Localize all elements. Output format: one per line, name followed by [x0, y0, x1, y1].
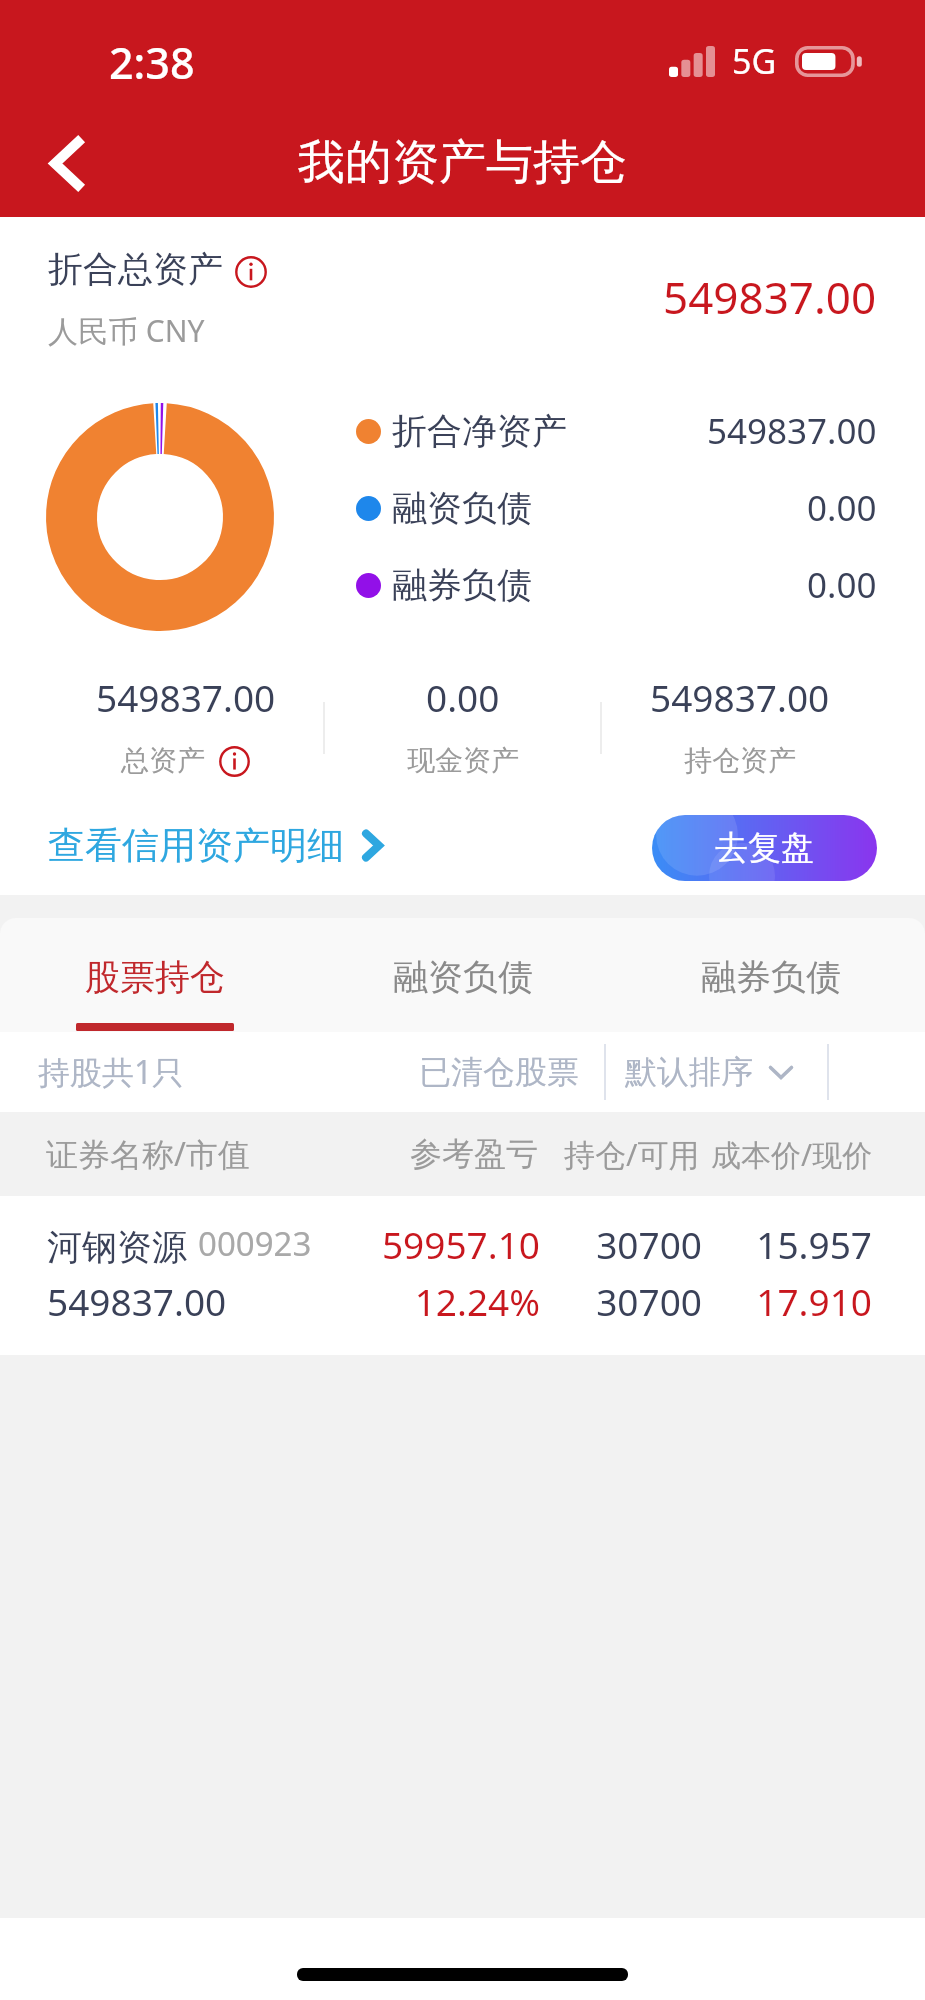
staticText: 折合净资产	[392, 409, 567, 453]
staticText: 折合总资产	[48, 247, 223, 291]
staticText: 000923	[198, 1221, 312, 1266]
staticText: 0.00	[807, 484, 877, 532]
button[interactable]: 默认排序	[625, 1046, 793, 1098]
staticText: 去复盘	[715, 827, 814, 869]
button[interactable]: 融资负债	[309, 918, 617, 1032]
staticText: 59957.10	[380, 1219, 540, 1269]
staticText: 融资负债	[393, 955, 533, 999]
button[interactable]: 已清仓股票	[419, 1046, 579, 1098]
staticText: 549837.00	[96, 672, 276, 722]
staticText: 融券负债	[392, 563, 532, 607]
staticText: 0.00	[807, 561, 877, 609]
button[interactable]: Back	[0, 110, 132, 217]
staticText: 融资负债	[392, 486, 532, 530]
staticText: 查看信用资产明细	[48, 822, 344, 869]
staticText: 15.957	[702, 1219, 872, 1269]
staticText: 12.24%	[380, 1276, 540, 1326]
staticText: 融券负债	[701, 955, 841, 999]
staticText: 549837.00	[47, 1276, 227, 1326]
button[interactable]: 河钢资源	[0, 1196, 925, 1355]
staticText: 0.00	[426, 672, 500, 722]
button[interactable]: 股票持仓	[0, 918, 309, 1032]
button[interactable]: 查看信用资产明细	[48, 818, 383, 873]
button[interactable]: 融券负债	[617, 918, 925, 1032]
staticText: 30700	[540, 1276, 702, 1326]
button[interactable]: 549837.00	[48, 672, 323, 778]
staticText: 成本价/现价	[711, 1134, 873, 1175]
staticText: 549837.00	[707, 407, 877, 455]
staticText: 我的资产与持仓	[298, 133, 627, 192]
staticText: 股票持仓	[85, 955, 225, 999]
staticText: 持股共1只	[38, 1050, 185, 1094]
button[interactable]: 总资产说明	[235, 256, 267, 288]
staticText: 持仓资产	[684, 743, 796, 778]
staticText: 证券名称/市值	[46, 1132, 250, 1176]
staticText: 2:38	[109, 33, 195, 92]
staticText: 17.910	[702, 1276, 872, 1326]
staticText: 5G	[732, 38, 777, 84]
staticText: 人民币 CNY	[48, 310, 205, 351]
button[interactable]: 0.00	[325, 672, 600, 778]
staticText: 549837.00	[650, 672, 830, 722]
staticText: 默认排序	[625, 1052, 753, 1092]
staticText: 参考盈亏	[410, 1134, 538, 1174]
staticText: 河钢资源	[47, 1225, 187, 1269]
staticText: 30700	[540, 1219, 702, 1269]
staticText: 549837.00	[663, 267, 877, 327]
button[interactable]: 549837.00	[602, 672, 877, 778]
staticText: 现金资产	[407, 743, 519, 778]
staticText: 总资产	[121, 743, 205, 778]
button[interactable]: 去复盘	[652, 815, 877, 881]
button[interactable]: 资产说明	[219, 746, 250, 777]
staticText: 持仓/可用	[564, 1133, 700, 1175]
